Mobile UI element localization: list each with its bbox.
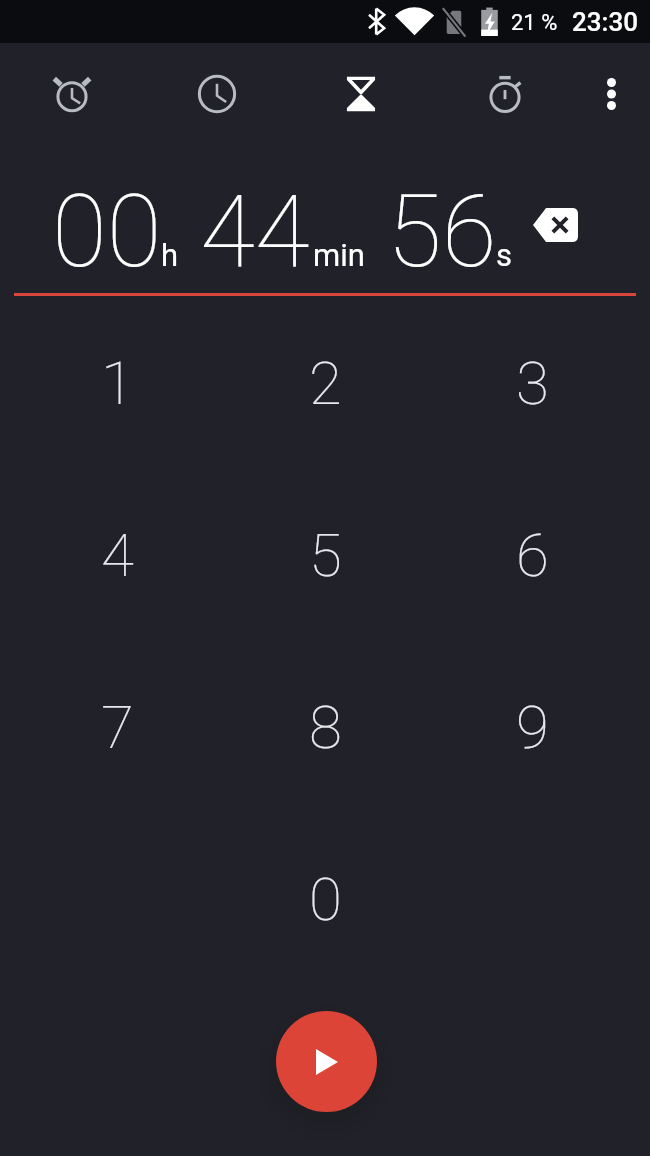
button[interactable]: 1 bbox=[13, 297, 221, 469]
button[interactable]: 4 bbox=[13, 469, 221, 641]
button[interactable]: Stopwatch bbox=[475, 64, 535, 124]
staticText: 00 bbox=[52, 173, 162, 290]
staticText: 4 bbox=[101, 520, 134, 590]
button[interactable]: 5 bbox=[221, 469, 429, 641]
staticText: 56 bbox=[387, 173, 497, 290]
staticText: 8 bbox=[309, 692, 342, 762]
staticText: h bbox=[161, 237, 179, 273]
staticText: 3 bbox=[516, 348, 549, 418]
staticText: 5 bbox=[309, 520, 342, 590]
staticText: 0 bbox=[309, 864, 342, 934]
button[interactable]: Backspace bbox=[533, 208, 578, 242]
button[interactable]: 8 bbox=[221, 641, 429, 813]
staticText: 23:30 bbox=[572, 7, 638, 37]
staticText: min bbox=[313, 237, 365, 273]
button[interactable]: Start timer bbox=[276, 1011, 377, 1112]
staticText: s bbox=[496, 237, 512, 273]
button[interactable]: 7 bbox=[13, 641, 221, 813]
staticText: 9 bbox=[516, 692, 549, 762]
button[interactable]: Clock bbox=[187, 64, 247, 124]
button[interactable]: 2 bbox=[221, 297, 429, 469]
staticText: 2 bbox=[309, 348, 342, 418]
button[interactable]: More options bbox=[585, 68, 637, 120]
staticText: 7 bbox=[101, 692, 134, 762]
button[interactable]: Timer bbox=[331, 64, 391, 124]
staticText: 6 bbox=[516, 520, 549, 590]
staticText: 44 bbox=[200, 173, 310, 290]
button[interactable]: 9 bbox=[428, 641, 636, 813]
button[interactable]: 3 bbox=[428, 297, 636, 469]
button[interactable]: 0 bbox=[221, 813, 429, 985]
staticText: 21 % bbox=[511, 10, 558, 36]
button[interactable]: Alarm bbox=[42, 64, 102, 124]
staticText: 1 bbox=[101, 348, 134, 418]
button[interactable]: 6 bbox=[428, 469, 636, 641]
